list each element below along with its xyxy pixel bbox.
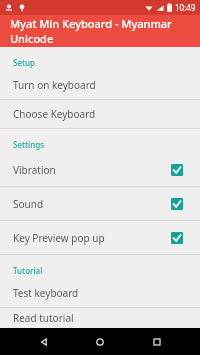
staticText: Choose Keyboard [13,107,96,121]
staticText: Test keyboard [13,286,79,300]
button[interactable]: Home [87,329,113,355]
button[interactable]: Choose Keyboard [0,100,200,128]
other: Enabled [171,164,183,176]
button[interactable]: Vibration [0,153,200,186]
button[interactable]: Test keyboard [0,279,200,307]
staticText: Vibration [13,163,171,177]
staticText: Setup [13,57,36,68]
button[interactable]: Key Preview pop up [0,221,200,254]
staticText: Turn on keyboard [13,78,96,92]
staticText: Read tutorial [13,311,74,325]
other: Enabled [171,198,183,210]
staticText: Tutorial [13,265,43,276]
button[interactable]: Read tutorial [0,308,200,328]
staticText: Key Preview pop up [13,231,171,245]
staticText: Sound [13,197,171,211]
button[interactable]: Back [31,329,57,355]
staticText: Myat Min Keyboard - Myanmar Unicode [10,16,200,46]
button[interactable]: Turn on keyboard [0,71,200,99]
staticText: 10:49 [175,2,196,13]
button[interactable]: Recents [144,329,170,355]
other: Enabled [171,232,183,244]
button[interactable]: Sound [0,187,200,220]
staticText: Settings [13,139,45,150]
